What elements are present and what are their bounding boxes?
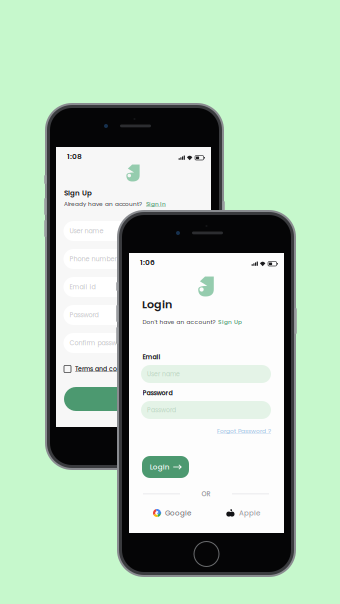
staticText: Forgot Password ? — [217, 427, 271, 435]
staticText: Don't have an account? — [142, 318, 215, 326]
staticText: 1:08 — [67, 151, 82, 162]
button[interactable]: Sign In — [146, 198, 172, 210]
staticText: Email — [142, 352, 160, 361]
staticText: Confirm password — [69, 338, 126, 347]
staticText: Login — [142, 297, 172, 312]
staticText: User name — [147, 370, 180, 378]
staticText: Sign Up — [64, 188, 92, 198]
staticText: Sign Up — [218, 318, 242, 326]
staticText: OR — [201, 489, 210, 498]
staticText: Password — [142, 388, 172, 397]
button[interactable]: Email id — [63, 277, 202, 297]
staticText: Sign In — [146, 200, 166, 208]
staticText: Google — [165, 508, 191, 518]
staticText: Phone number — [69, 254, 116, 263]
button[interactable]: User name — [141, 365, 271, 383]
button[interactable]: Login — [142, 456, 189, 478]
button[interactable]: Forgot Password ? — [189, 426, 271, 436]
button[interactable]: Phone number — [63, 249, 202, 269]
button[interactable]: User name — [63, 221, 202, 241]
button[interactable]: Sign Up — [218, 316, 246, 328]
staticText: 1:06 — [140, 257, 155, 268]
staticText: Password — [69, 310, 98, 319]
button[interactable]: Confirm password — [63, 333, 202, 353]
staticText: Already have an account? — [64, 200, 142, 208]
staticText: Email id — [69, 282, 95, 291]
button[interactable]: Terms and conditions — [64, 363, 184, 375]
staticText: User name — [69, 226, 103, 235]
button[interactable]: Password — [141, 401, 271, 419]
button[interactable]: Password — [63, 305, 202, 325]
button[interactable]: Google — [153, 505, 209, 521]
button[interactable]: Apple — [226, 505, 282, 521]
staticText: Login — [150, 462, 170, 472]
staticText: Terms and conditions — [75, 365, 142, 373]
button[interactable]: Sign Up — [64, 387, 203, 411]
staticText: Apple — [239, 508, 260, 518]
staticText: Password — [147, 406, 176, 414]
